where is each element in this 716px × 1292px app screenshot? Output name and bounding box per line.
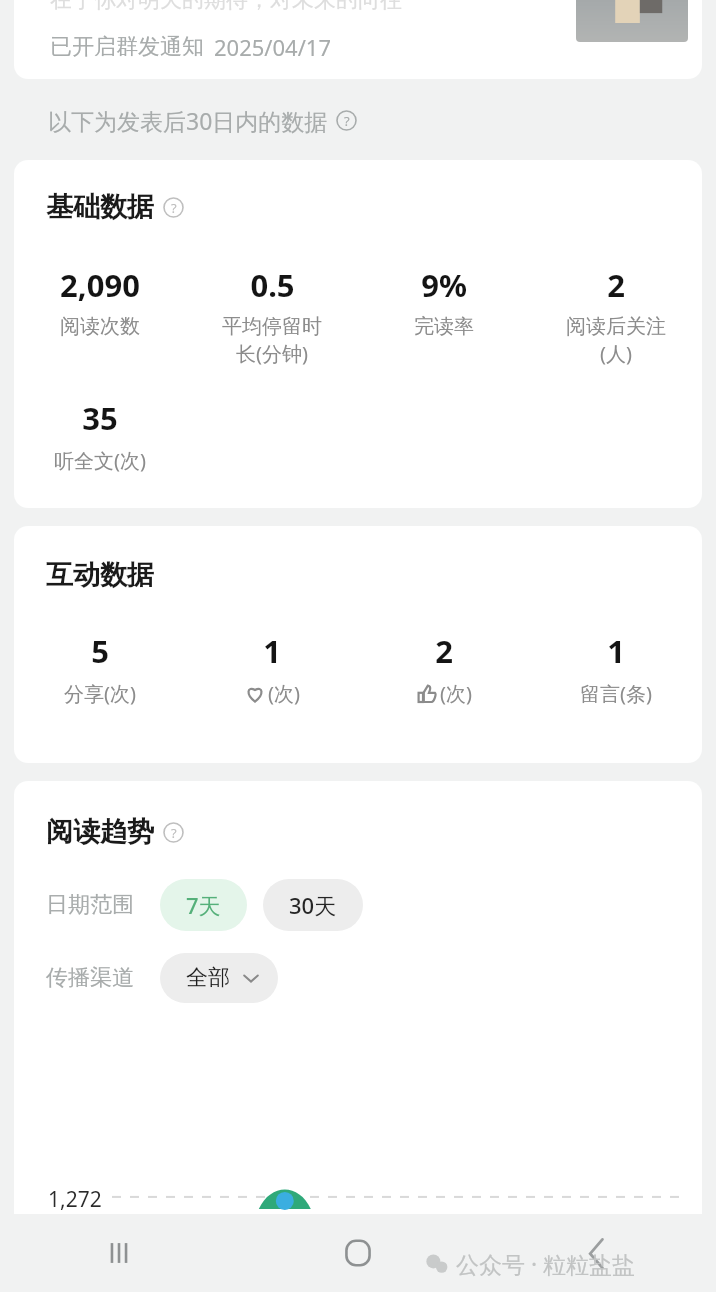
staticText: 2 [607, 264, 625, 306]
button[interactable]: 5 [14, 630, 186, 707]
staticText: (次) [268, 680, 300, 707]
staticText: 全部 [186, 964, 230, 992]
button[interactable]: 说明 [163, 822, 184, 843]
staticText: 9% [421, 264, 467, 306]
staticText: 已开启群发通知 [50, 33, 204, 61]
staticText: 听全文(次) [54, 447, 146, 474]
button[interactable]: Back [477, 1214, 716, 1292]
button[interactable]: 互动数据 [46, 558, 154, 592]
button[interactable]: 2,090 [14, 264, 186, 339]
staticText: ? [344, 112, 350, 130]
staticText: 1,272 [48, 1185, 102, 1214]
button[interactable]: 1 [186, 630, 358, 707]
button[interactable]: 1 [530, 630, 702, 707]
button[interactable]: 2 [358, 630, 530, 707]
staticText: 2025/04/17 [214, 32, 332, 62]
staticText: 日期范围 [46, 891, 134, 919]
staticText: 1 [263, 630, 281, 672]
staticText: 1 [607, 630, 625, 672]
staticText: 公众号 · 粒粒盐盐 [456, 1248, 636, 1279]
button[interactable]: 35 [14, 397, 186, 474]
staticText: ? [171, 824, 177, 842]
button[interactable]: Recents [0, 1214, 238, 1292]
staticText: 30天 [289, 890, 337, 920]
staticText: ? [171, 199, 177, 217]
staticText: 阅读趋势 [46, 815, 154, 849]
button[interactable]: 30天 [263, 879, 363, 931]
staticText: 在于你对明天的期待，对未来的向往 [50, 0, 402, 14]
staticText: 平均停留时 长(分钟) [222, 314, 322, 367]
staticText: 阅读次数 [60, 314, 140, 339]
button[interactable]: 0.5 [186, 264, 358, 367]
button[interactable]: 阅读趋势 [46, 815, 184, 849]
staticText: 基础数据 [46, 190, 154, 224]
staticText: 完读率 [414, 314, 474, 339]
staticText: 2,090 [60, 264, 140, 306]
button[interactable]: 9% [358, 264, 530, 339]
staticText: 0.5 [250, 264, 295, 306]
staticText: 阅读后关注 (人) [566, 314, 666, 367]
staticText: 传播渠道 [46, 964, 134, 992]
staticText: 35 [82, 397, 118, 439]
button[interactable]: 说明 [163, 197, 184, 218]
staticText: 留言(条) [580, 680, 652, 707]
staticText: 2 [435, 630, 453, 672]
button[interactable]: 说明 [336, 110, 357, 131]
button[interactable]: 2 [530, 264, 702, 367]
button[interactable]: 全部 [160, 953, 278, 1003]
staticText: 分享(次) [64, 680, 136, 707]
button[interactable]: 在于你对明天的期待，对未来的向往 [14, 0, 702, 79]
button[interactable]: Home [238, 1214, 477, 1292]
staticText: (次) [440, 680, 472, 707]
staticText: 以下为发表后30日内的数据 [48, 105, 328, 136]
staticText: 7天 [186, 890, 221, 920]
staticText: 5 [91, 630, 109, 672]
button[interactable]: 7天 [160, 879, 247, 931]
button[interactable]: 基础数据 [46, 190, 184, 224]
